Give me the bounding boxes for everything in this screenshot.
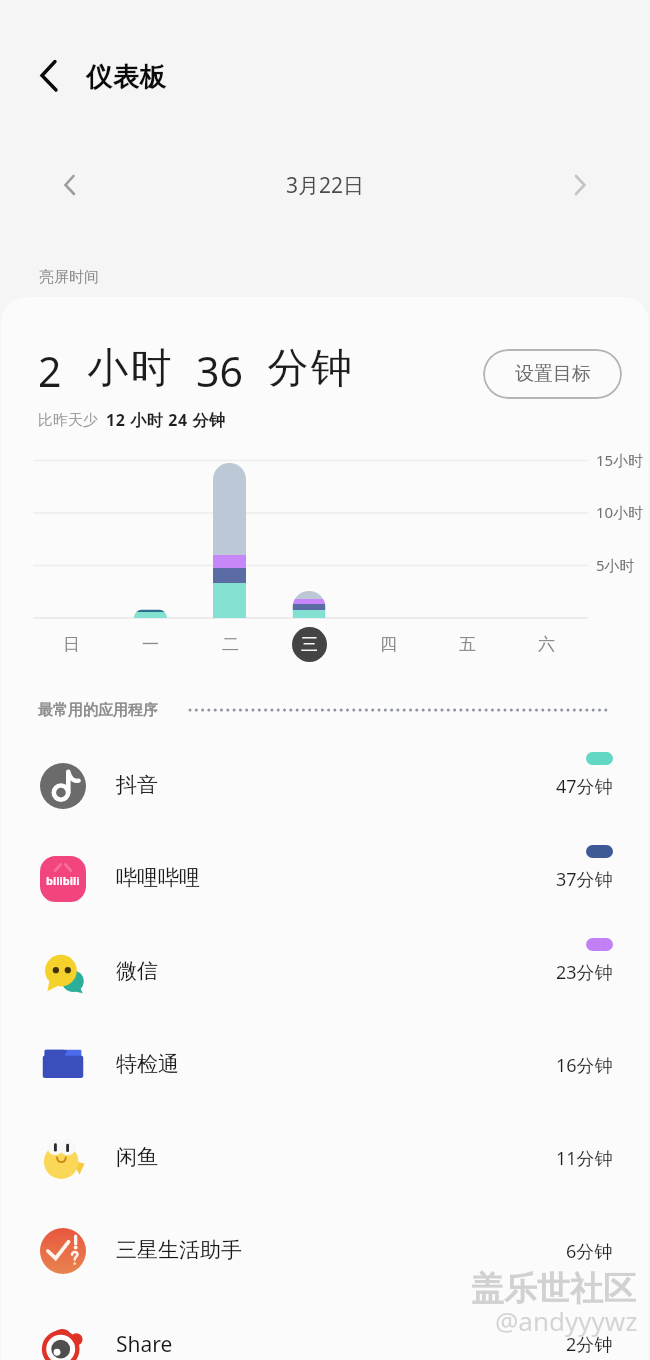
button[interactable]: 四 [366,622,410,666]
button[interactable]: 五 [445,622,489,666]
staticText: 10小时 [596,502,644,522]
staticText: @andyyywz [495,1303,638,1338]
staticText: 三 [301,634,318,655]
button[interactable]: bilibili [0,833,650,926]
button[interactable]: 日 [49,622,93,666]
staticText: Share [116,1330,173,1359]
staticText: 仪表板 [86,61,167,94]
staticText: 15小时 [596,450,644,470]
staticText: 六 [538,634,555,655]
staticText: 五 [459,634,476,655]
staticText: 小时 [86,343,173,395]
staticText: 11分钟 [556,1146,613,1171]
staticText: 特检通 [116,1051,179,1077]
staticText: 分钟 [266,343,353,395]
button[interactable]: 一 [128,622,172,666]
staticText: 3月22日 [286,171,365,200]
button[interactable]: 设置目标 [483,349,622,399]
staticText: 亮屏时间 [39,268,99,287]
staticText: 三星生活助手 [116,1237,242,1263]
staticText: 四 [380,634,397,655]
staticText: 5小时 [596,555,635,575]
staticText: 2 [38,343,62,399]
staticText: 12 小时 24 分钟 [106,409,226,431]
staticText: 二 [222,634,239,655]
button[interactable]: 特检通 [0,1019,650,1112]
staticText: 闲鱼 [116,1144,158,1170]
button[interactable]: 三 [287,622,331,666]
staticText: 23分钟 [556,960,613,985]
staticText: 设置目标 [515,362,591,386]
staticText: 日 [63,634,80,655]
staticText: 比昨天少 [38,411,98,430]
button[interactable]: 三星生活助手 [0,1205,650,1298]
staticText: 36 [196,343,243,399]
button[interactable]: Share [0,1298,650,1360]
staticText: 哔哩哔哩 [116,865,200,891]
staticText: 6分钟 [566,1239,613,1264]
staticText: 47分钟 [556,774,613,799]
button[interactable]: 闲鱼 [0,1112,650,1205]
button[interactable]: 抖音 [0,740,650,833]
button[interactable]: Previous day [47,162,93,208]
staticText: 最常用的应用程序 [38,701,158,720]
button[interactable]: Next day [557,162,603,208]
staticText: 16分钟 [556,1053,613,1078]
button[interactable]: 微信 [0,926,650,1019]
button[interactable]: 二 [208,622,252,666]
staticText: 盖乐世社区 [471,1268,636,1310]
button[interactable]: Back [27,54,71,98]
staticText: bilibili [46,873,80,888]
staticText: 一 [142,634,159,655]
staticText: 抖音 [116,772,158,798]
staticText: 微信 [116,958,158,984]
button[interactable]: 六 [524,622,568,666]
staticText: 37分钟 [556,867,613,892]
staticText: 2分钟 [566,1332,613,1357]
